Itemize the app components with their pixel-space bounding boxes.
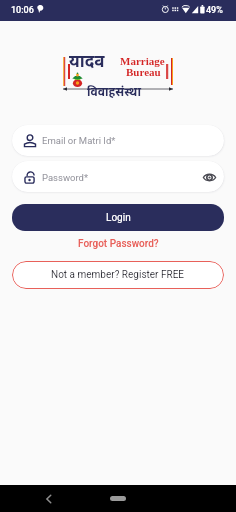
staticText: Forgot Password? bbox=[78, 238, 159, 250]
button[interactable]: Home bbox=[110, 496, 126, 501]
staticText: यादव bbox=[69, 52, 105, 74]
staticText: Login bbox=[106, 212, 131, 224]
staticText: Password* bbox=[42, 172, 89, 183]
staticText: Bureau bbox=[126, 66, 161, 78]
staticText: Marriage bbox=[120, 55, 165, 67]
staticText: Email or Matri Id* bbox=[42, 135, 116, 146]
button[interactable]: Show password bbox=[201, 169, 217, 185]
button[interactable]: Login bbox=[12, 204, 224, 231]
button[interactable]: Not a member? Register FREE bbox=[12, 261, 224, 289]
button[interactable]: Back bbox=[40, 491, 56, 507]
staticText: Not a member? Register FREE bbox=[51, 269, 185, 281]
button[interactable]: Password* bbox=[12, 161, 224, 192]
button[interactable]: Forgot Password? bbox=[0, 236, 236, 252]
staticText: विवाहसंस्था bbox=[87, 85, 141, 101]
staticText: 49% bbox=[206, 5, 223, 16]
staticText: 10:06 bbox=[11, 5, 34, 16]
button[interactable]: Email or Matri Id* bbox=[12, 125, 224, 156]
